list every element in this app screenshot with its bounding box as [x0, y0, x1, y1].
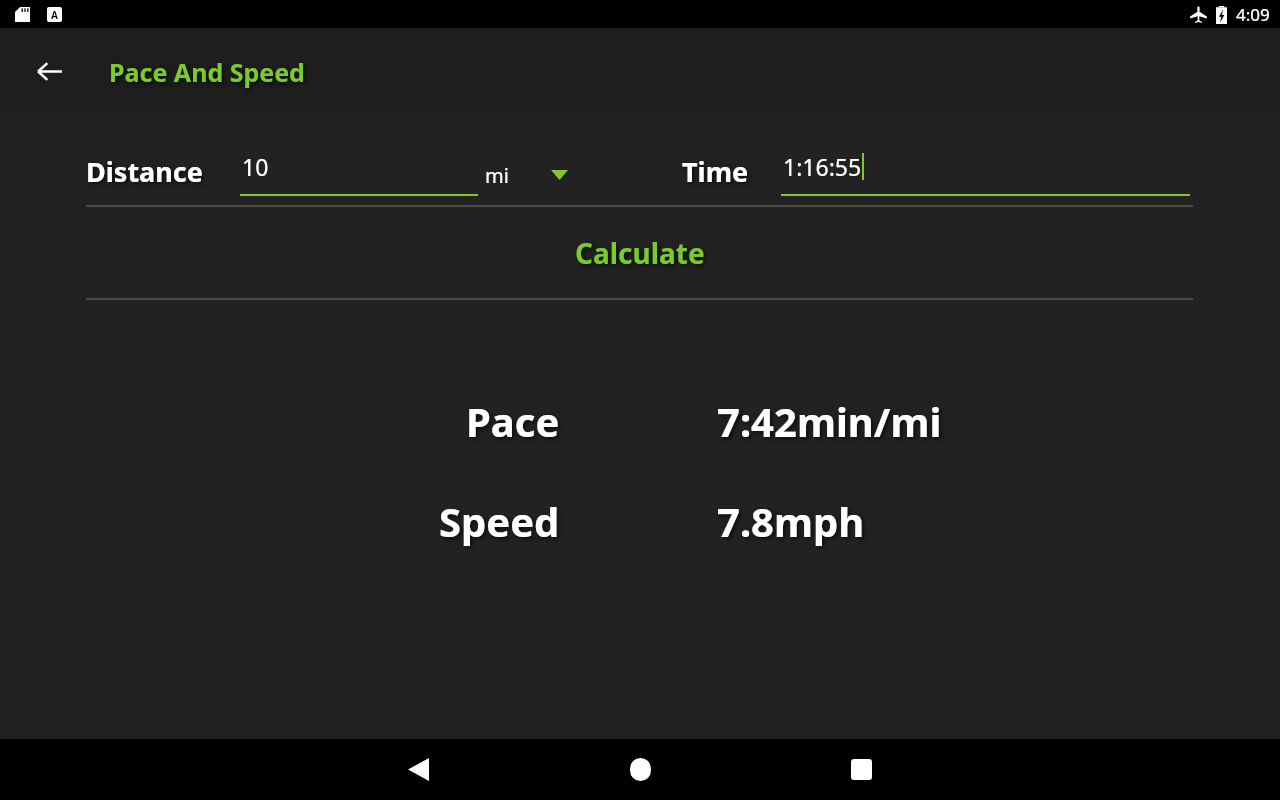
staticText: Pace: [466, 394, 560, 448]
button[interactable]: Back: [388, 739, 449, 800]
staticText: 4:09: [1236, 3, 1270, 26]
staticText: 10: [242, 151, 269, 182]
button[interactable]: Navigate up: [23, 45, 75, 97]
staticText: A: [51, 8, 58, 22]
staticText: 7.8mph: [717, 494, 865, 548]
button[interactable]: Recent apps: [831, 739, 892, 800]
staticText: Calculate: [575, 234, 705, 272]
staticText: mi: [485, 162, 509, 189]
staticText: Time: [682, 153, 749, 190]
staticText: Pace And Speed: [109, 55, 305, 89]
button[interactable]: Home: [610, 739, 671, 800]
button[interactable]: 10: [240, 149, 478, 196]
staticText: 7:42min/mi: [717, 394, 942, 448]
staticText: Distance: [86, 153, 203, 190]
staticText: Speed: [439, 494, 560, 548]
button[interactable]: Calculate: [0, 207, 1280, 298]
button[interactable]: Distance unit: mi: [485, 155, 590, 195]
button[interactable]: 1:16:55: [781, 149, 1190, 196]
staticText: 1:16:55: [783, 151, 862, 182]
